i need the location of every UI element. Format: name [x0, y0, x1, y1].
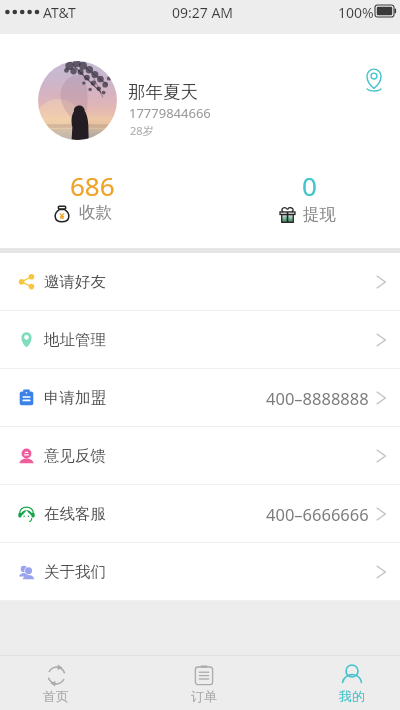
- button[interactable]: 关于我们: [0, 543, 400, 600]
- staticText: 17779844666: [129, 104, 211, 122]
- button[interactable]: 订单: [174, 665, 234, 704]
- staticText: 邀请好友: [44, 272, 106, 292]
- staticText: 订单: [191, 688, 217, 704]
- staticText: 关于我们: [44, 562, 106, 582]
- staticText: 收款: [79, 202, 112, 223]
- button[interactable]: 邀请好友: [0, 253, 400, 310]
- staticText: 我的: [339, 688, 365, 704]
- staticText: 686: [70, 168, 115, 203]
- button[interactable]: 在线客服: [0, 485, 400, 542]
- button[interactable]: 申请加盟: [0, 369, 400, 426]
- staticText: 在线客服: [44, 504, 106, 524]
- staticText: 09:27 AM: [172, 3, 234, 22]
- staticText: 首页: [43, 688, 69, 704]
- staticText: 0: [302, 168, 317, 203]
- button[interactable]: 意见反馈: [0, 427, 400, 484]
- staticText: 地址管理: [44, 330, 106, 350]
- button[interactable]: 地址管理: [0, 311, 400, 368]
- staticText: 400–6666666: [266, 503, 369, 525]
- button[interactable]: 首页: [26, 665, 86, 704]
- staticText: 28岁: [130, 123, 154, 138]
- staticText: 意见反馈: [44, 446, 106, 466]
- staticText: 申请加盟: [44, 388, 106, 408]
- staticText: 100%: [338, 3, 374, 22]
- staticText: 提现: [303, 204, 336, 225]
- button[interactable]: 0: [240, 168, 390, 238]
- staticText: 400–8888888: [266, 387, 369, 409]
- staticText: AT&T: [43, 3, 76, 22]
- button[interactable]: 我的: [322, 665, 382, 704]
- button[interactable]: Location: [358, 64, 390, 96]
- button[interactable]: Profile photo: [38, 61, 117, 140]
- staticText: 那年夏天: [128, 81, 198, 103]
- button[interactable]: 686: [20, 168, 180, 238]
